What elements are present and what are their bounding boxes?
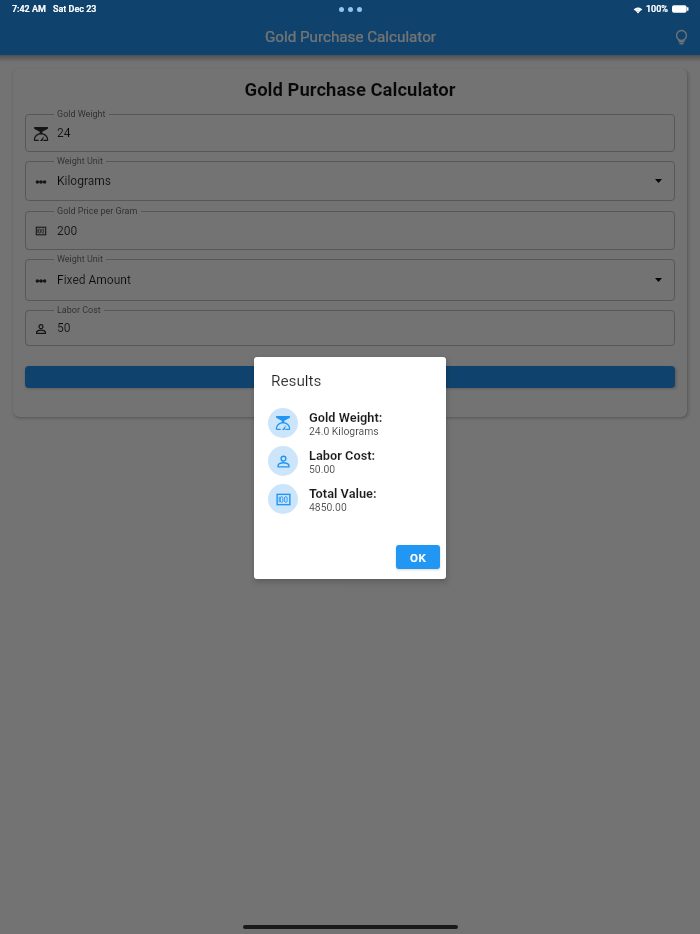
staticText: 7:42 AM [12,4,46,15]
staticText: Sat Dec 23 [53,4,97,15]
staticText: Labor Cost: [309,448,376,463]
staticText: CALCULATE [316,371,384,384]
button[interactable]: 200 [25,211,675,250]
staticText: Kilograms [57,174,112,188]
staticText: 4850.00 [309,501,347,513]
staticText: 50 [57,321,71,335]
button[interactable]: Kilograms [25,161,675,201]
button[interactable]: Fixed Amount [25,259,675,301]
staticText: OK [410,551,427,564]
staticText: 24 [57,126,71,140]
staticText: 50.00 [309,463,336,475]
button[interactable]: Tips [668,24,694,50]
button[interactable]: CALCULATE [25,366,675,388]
button[interactable]: Gold Weight: [268,404,440,442]
staticText: Gold Weight: [309,410,383,425]
staticText: Gold Purchase Calculator [265,28,436,46]
button[interactable]: 24 [25,114,675,152]
staticText: Results [271,372,322,390]
staticText: Weight Unit [57,156,103,167]
button[interactable]: Total Value: [268,480,440,518]
staticText: 200 [57,224,78,238]
staticText: Fixed Amount [57,273,131,287]
staticText: Weight Unit [57,254,103,265]
button[interactable]: 50 [25,310,675,346]
button[interactable]: Labor Cost: [268,442,440,480]
button[interactable]: OK [396,545,440,569]
staticText: Gold Price per Gram [57,206,138,217]
staticText: Gold Purchase Calculator [25,79,675,101]
staticText: Total Value: [309,486,377,501]
staticText: Labor Cost [57,305,101,316]
staticText: 24.0 Kilograms [309,425,379,437]
staticText: Gold Weight [57,109,106,120]
staticText: 100% [646,4,668,15]
